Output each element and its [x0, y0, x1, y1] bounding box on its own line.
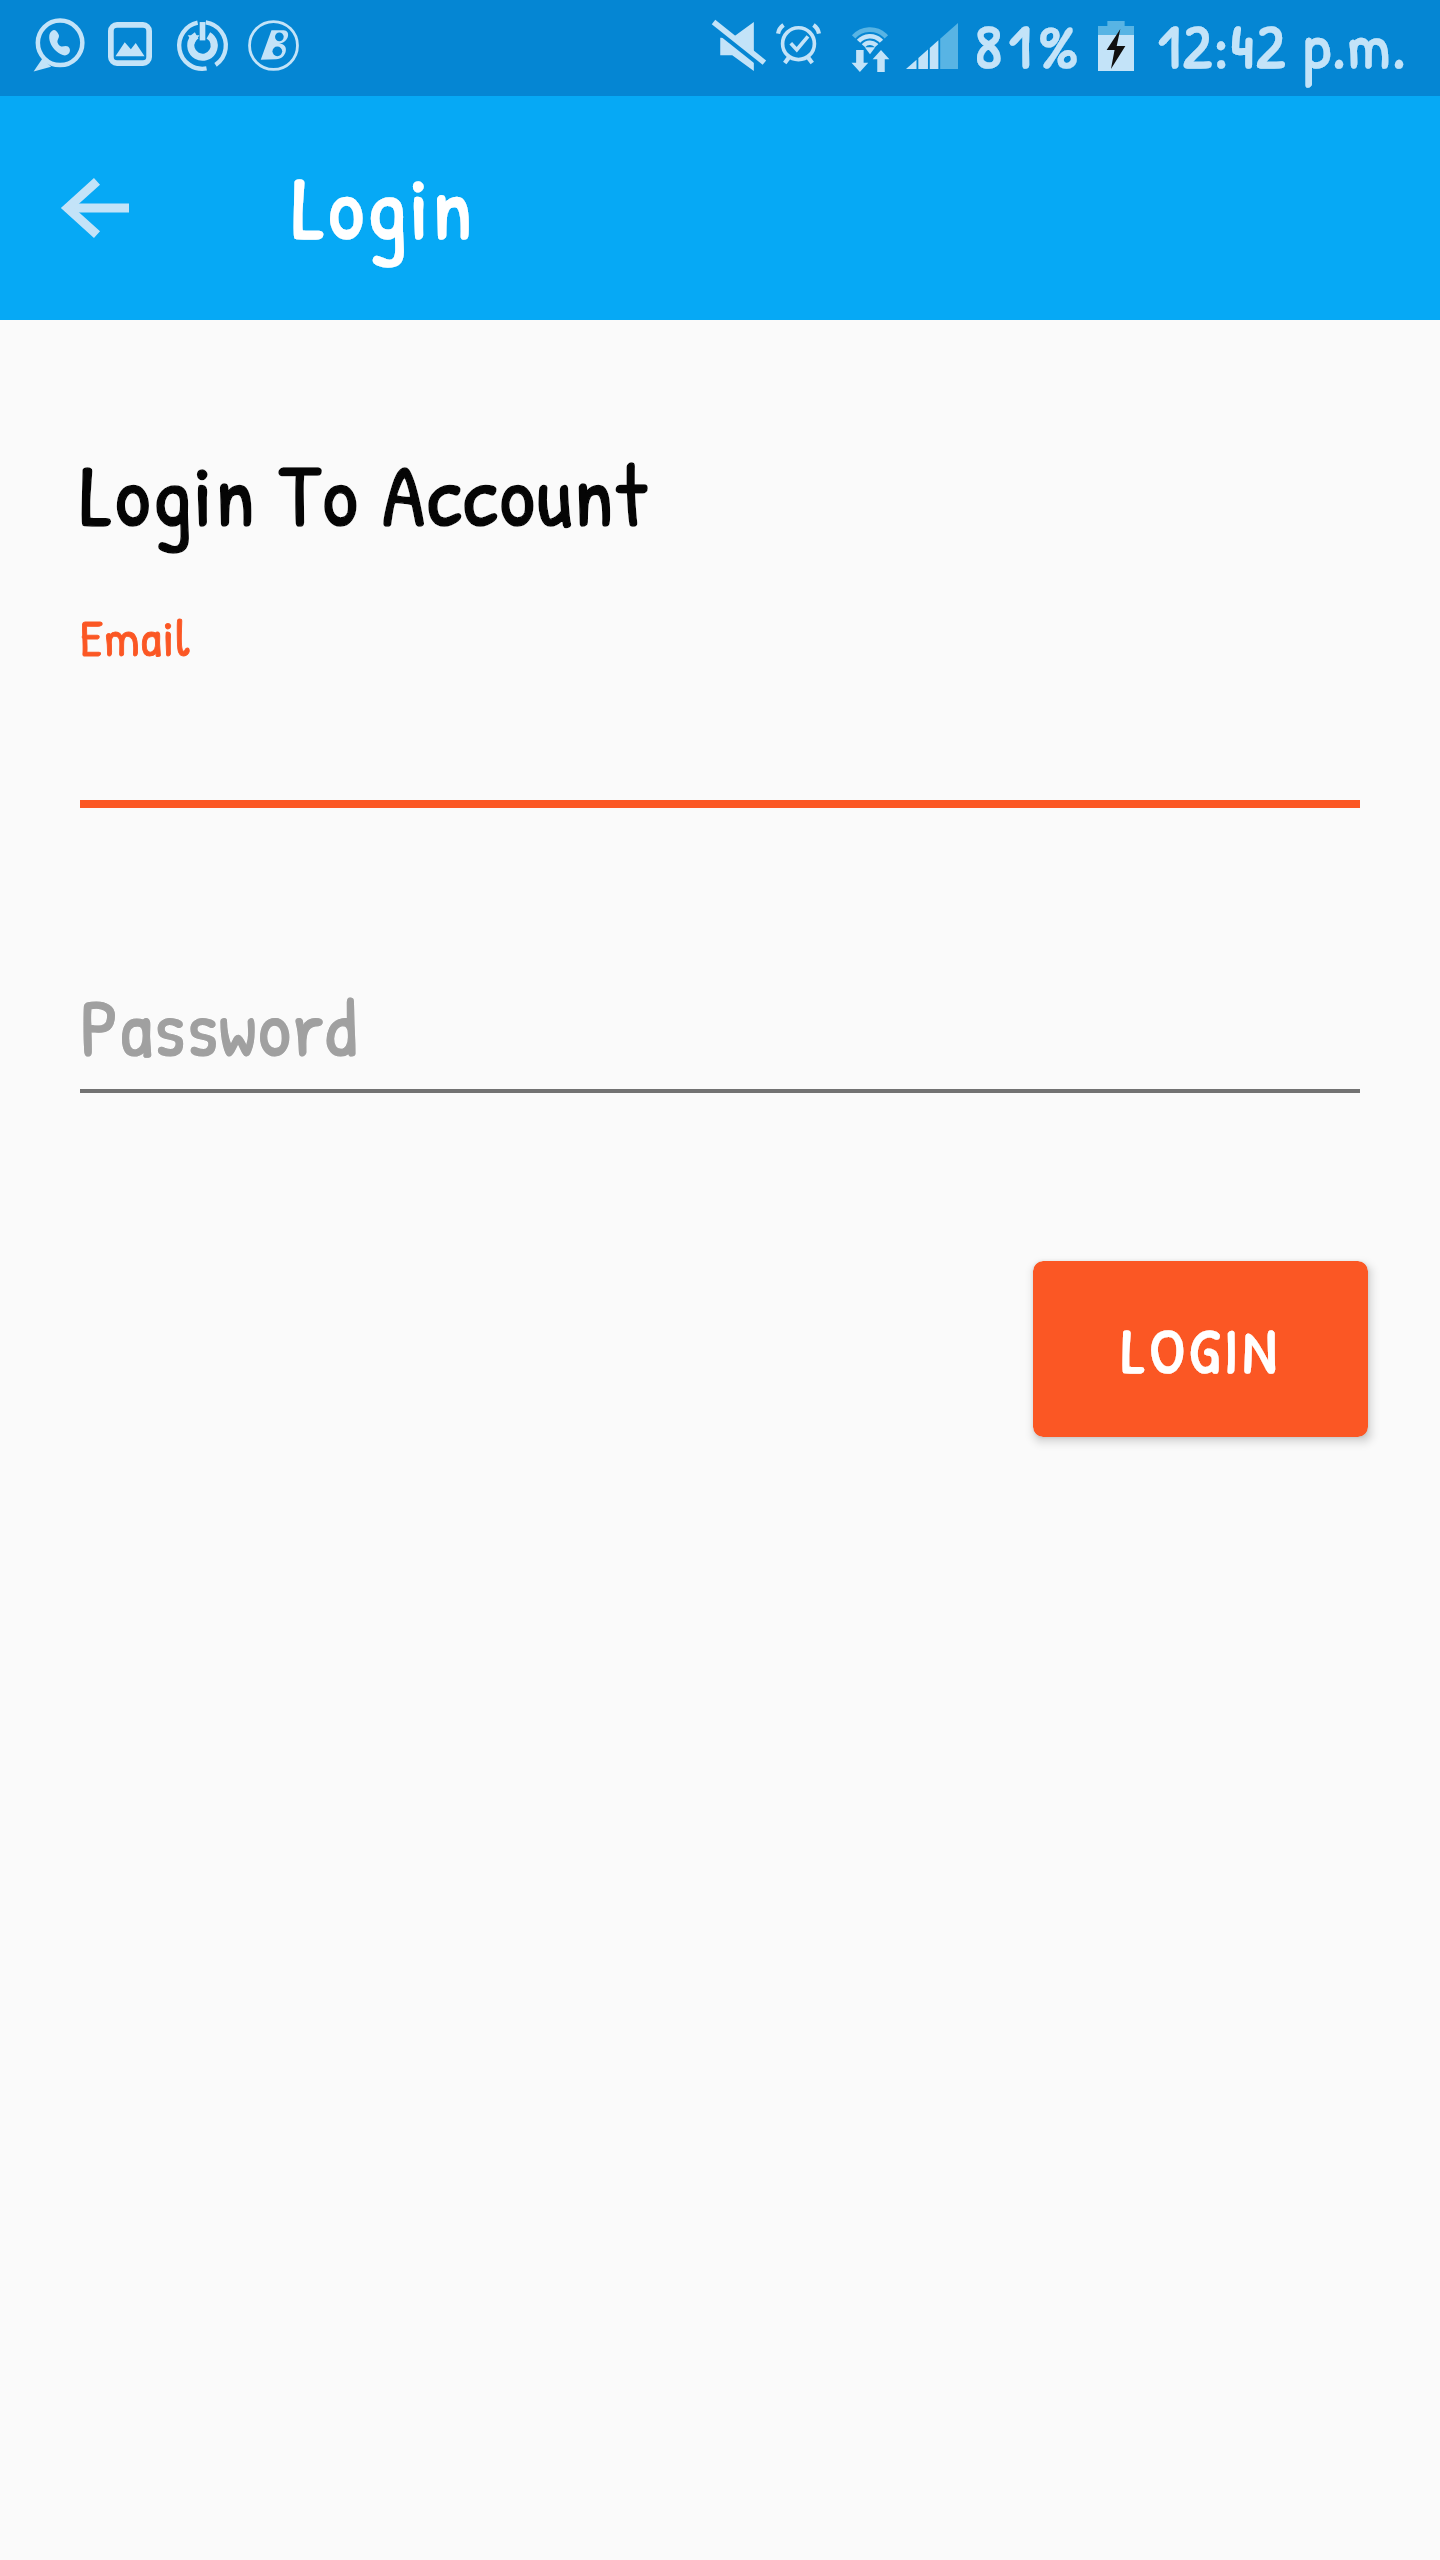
staticText: 12:42 p.m.: [1158, 3, 1408, 87]
staticText: Login: [292, 146, 476, 267]
staticText: 81%: [975, 3, 1086, 87]
staticText: 12:42 p.m.: [1158, 3, 1408, 87]
button[interactable]: LOGIN: [1033, 1261, 1368, 1437]
staticText: Password: [80, 972, 359, 1082]
staticText: Email: [80, 602, 191, 672]
button[interactable]: Navigate up: [40, 151, 154, 265]
button[interactable]: Email: [80, 600, 1360, 808]
staticText: Email: [80, 602, 191, 672]
staticText: 81%: [975, 3, 1086, 87]
staticText: Password: [80, 972, 359, 1082]
button[interactable]: Password: [80, 965, 1360, 1093]
staticText: LOGIN: [1121, 1306, 1281, 1393]
staticText: LOGIN: [1121, 1306, 1281, 1393]
staticText: Login: [292, 146, 476, 267]
staticText: Login To Account: [80, 434, 648, 553]
staticText: Login To Account: [80, 434, 648, 553]
